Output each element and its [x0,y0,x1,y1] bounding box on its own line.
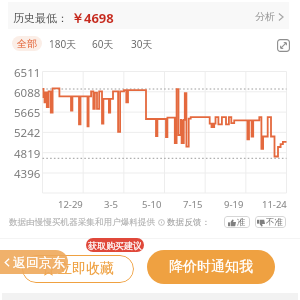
staticText: 数据反馈： [167,217,210,228]
staticText: 不准 [266,217,284,228]
button[interactable]: 30天 [128,36,156,51]
button[interactable]: Fullscreen [277,39,290,52]
button[interactable]: 获取购买建议 [86,238,144,252]
staticText: 分析 [255,10,275,23]
staticText: 全部 [17,37,37,50]
staticText: 6511 [14,65,41,77]
staticText: 获取购买建议 [88,240,142,251]
staticText: 3-5 [104,198,118,209]
button[interactable]: 准 [224,216,250,228]
button[interactable]: 返回京东 [0,250,68,274]
staticText: 6088 [14,85,41,97]
staticText: 准 [237,217,246,228]
button[interactable]: 180天 [47,36,79,51]
button[interactable]: 降价时通知我 [147,250,275,284]
staticText: 7-15 [183,198,203,209]
button[interactable]: 全部 [12,36,42,51]
button[interactable]: 立即收藏 [22,255,134,283]
staticText: 11-24 [262,198,287,209]
staticText: 12-29 [58,198,83,209]
staticText: 5-10 [142,198,162,209]
staticText: 60天 [92,37,114,51]
staticText: 5242 [14,125,41,137]
staticText: 数据由慢慢买机器采集和用户爆料提供 [9,217,156,228]
staticText: 5665 [14,105,41,117]
staticText: 30天 [131,37,153,51]
button[interactable]: 不准 [255,216,286,228]
staticText: 4819 [14,146,41,158]
staticText: 历史最低： [13,11,68,25]
staticText: 降价时通知我 [169,258,253,276]
staticText: 180天 [49,37,77,51]
staticText: 返回京东 [13,254,65,270]
staticText: 立即收藏 [58,260,114,278]
staticText: 4396 [14,166,41,178]
button[interactable]: 分析 [255,10,284,23]
button[interactable]: 60天 [89,36,117,51]
staticText: 9-19 [224,198,244,209]
staticText: ￥4698 [71,9,114,27]
